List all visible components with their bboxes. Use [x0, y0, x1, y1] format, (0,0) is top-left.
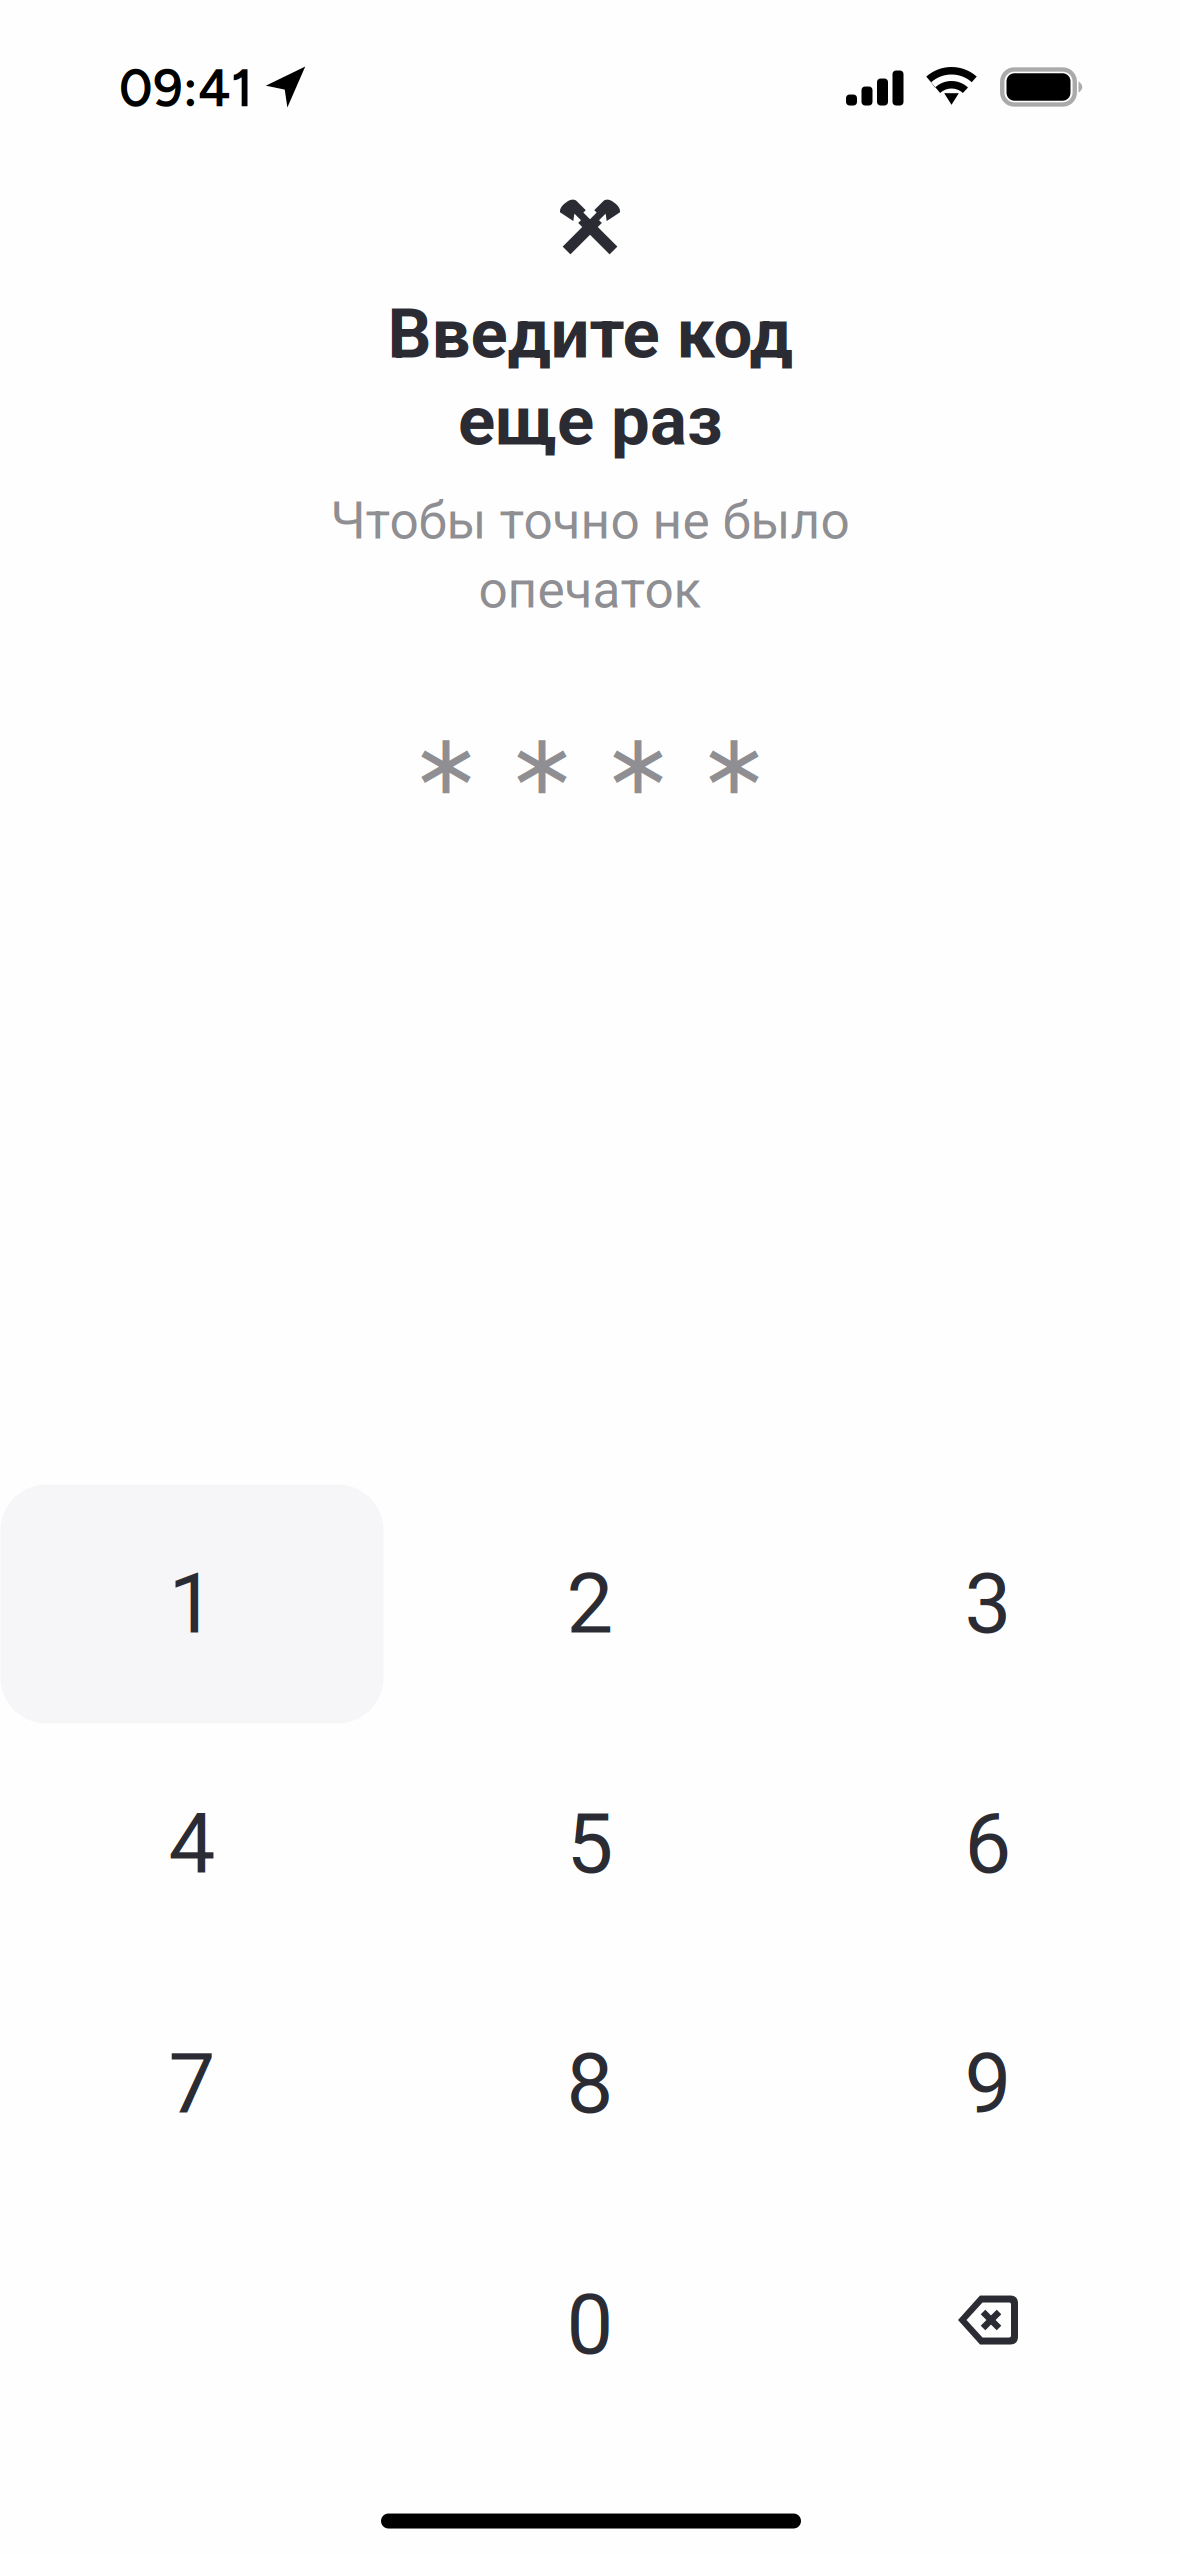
- staticText: 5: [566, 1795, 613, 1893]
- button[interactable]: 0: [398, 2205, 781, 2444]
- button[interactable]: Удалить: [796, 2205, 1179, 2444]
- staticText: 3: [964, 1555, 1011, 1653]
- button[interactable]: 8: [398, 1964, 781, 2203]
- button[interactable]: 1: [0, 1484, 383, 1723]
- staticText: еще раз: [458, 381, 722, 461]
- button[interactable]: 7: [0, 1964, 383, 2203]
- button[interactable]: 9: [796, 1964, 1179, 2203]
- staticText: 8: [566, 2035, 613, 2133]
- button[interactable]: 2: [398, 1484, 781, 1723]
- button[interactable]: 4: [0, 1724, 383, 1963]
- staticText: Чтобы точно не было: [330, 491, 849, 551]
- staticText: ∗: [602, 715, 673, 813]
- staticText: 7: [168, 2035, 215, 2133]
- staticText: 2: [566, 1555, 613, 1653]
- staticText: ∗: [506, 715, 577, 813]
- staticText: опечаток: [478, 560, 701, 620]
- staticText: Введите код: [387, 294, 792, 374]
- staticText: 6: [964, 1795, 1011, 1893]
- staticText: 4: [168, 1795, 215, 1893]
- staticText: 0: [566, 2276, 613, 2374]
- button[interactable]: 3: [796, 1484, 1179, 1723]
- button[interactable]: 6: [796, 1724, 1179, 1963]
- staticText: ∗: [410, 715, 481, 813]
- staticText: 1: [168, 1555, 215, 1653]
- staticText: 09:41: [119, 57, 253, 119]
- staticText: 9: [964, 2035, 1011, 2133]
- staticText: ∗: [698, 715, 769, 813]
- button[interactable]: 5: [398, 1724, 781, 1963]
